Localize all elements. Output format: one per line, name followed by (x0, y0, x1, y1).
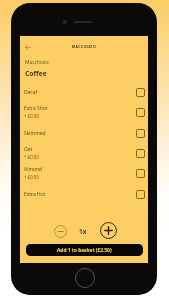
button[interactable]: Almond (24, 163, 145, 183)
button[interactable]: Decrease quantity (52, 223, 68, 239)
staticText: Macchiato (25, 59, 49, 66)
staticText: Add 1 to basket (£2.50) (57, 247, 112, 254)
button[interactable]: Extra Hot (24, 184, 145, 204)
button[interactable]: Increase quantity (100, 222, 117, 239)
button[interactable]: Decaf (24, 82, 145, 102)
staticText: Extra Shot (24, 105, 48, 112)
staticText: Coffee (25, 69, 47, 78)
staticText: Almond (24, 166, 42, 173)
staticText: Oat (24, 146, 33, 153)
staticText: Decaf (24, 89, 38, 96)
button[interactable]: Add 1 to basket (£2.50) (26, 244, 143, 256)
button[interactable]: Skimmed (24, 123, 145, 143)
staticText: + £0.50 (24, 113, 39, 119)
staticText: + £0.50 (24, 154, 39, 160)
button[interactable]: Extra Shot (24, 102, 145, 122)
staticText: + £0.50 (24, 174, 39, 180)
staticText: MACCHIATO (20, 44, 148, 49)
button[interactable]: Oat (24, 143, 145, 163)
staticText: Extra Hot (24, 191, 46, 198)
button[interactable]: Back (21, 40, 35, 54)
staticText: 1x (79, 227, 87, 236)
staticText: Skimmed (24, 130, 46, 137)
